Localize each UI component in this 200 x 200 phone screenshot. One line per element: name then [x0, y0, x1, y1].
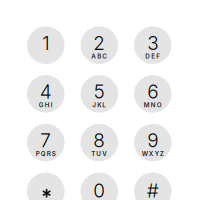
staticText: J K L — [92, 101, 106, 109]
button[interactable]: 5 — [80, 75, 118, 113]
staticText: 5 — [94, 80, 105, 103]
staticText: G H I — [39, 101, 53, 109]
button[interactable]: 1 — [27, 26, 64, 64]
staticText: 4 — [40, 80, 52, 103]
staticText: W X Y Z — [142, 150, 164, 157]
button[interactable]: 2 — [80, 26, 118, 64]
staticText: M N O — [144, 101, 162, 109]
staticText: 8 — [93, 129, 105, 152]
staticText: 3 — [147, 31, 158, 54]
staticText: P Q R S — [36, 150, 56, 157]
button[interactable]: 9 — [134, 124, 172, 161]
button[interactable]: 3 — [134, 26, 172, 64]
button[interactable]: 8 — [80, 124, 118, 161]
staticText: D E F — [145, 52, 160, 60]
button[interactable]: 6 — [134, 75, 172, 113]
staticText: 6 — [147, 80, 158, 103]
button[interactable]: 0 — [80, 173, 118, 200]
staticText: 0 — [93, 179, 105, 200]
button[interactable]: 4 — [27, 75, 64, 113]
staticText: 9 — [147, 129, 158, 152]
staticText: # — [147, 179, 159, 200]
button[interactable]: Star — [27, 173, 64, 200]
staticText: 1 — [42, 31, 49, 54]
button[interactable]: 7 — [27, 124, 64, 161]
staticText: T U V — [91, 150, 107, 157]
staticText: 2 — [93, 31, 105, 54]
button[interactable]: # — [134, 173, 172, 200]
staticText: A B C — [91, 52, 107, 60]
staticText: 7 — [40, 129, 51, 152]
